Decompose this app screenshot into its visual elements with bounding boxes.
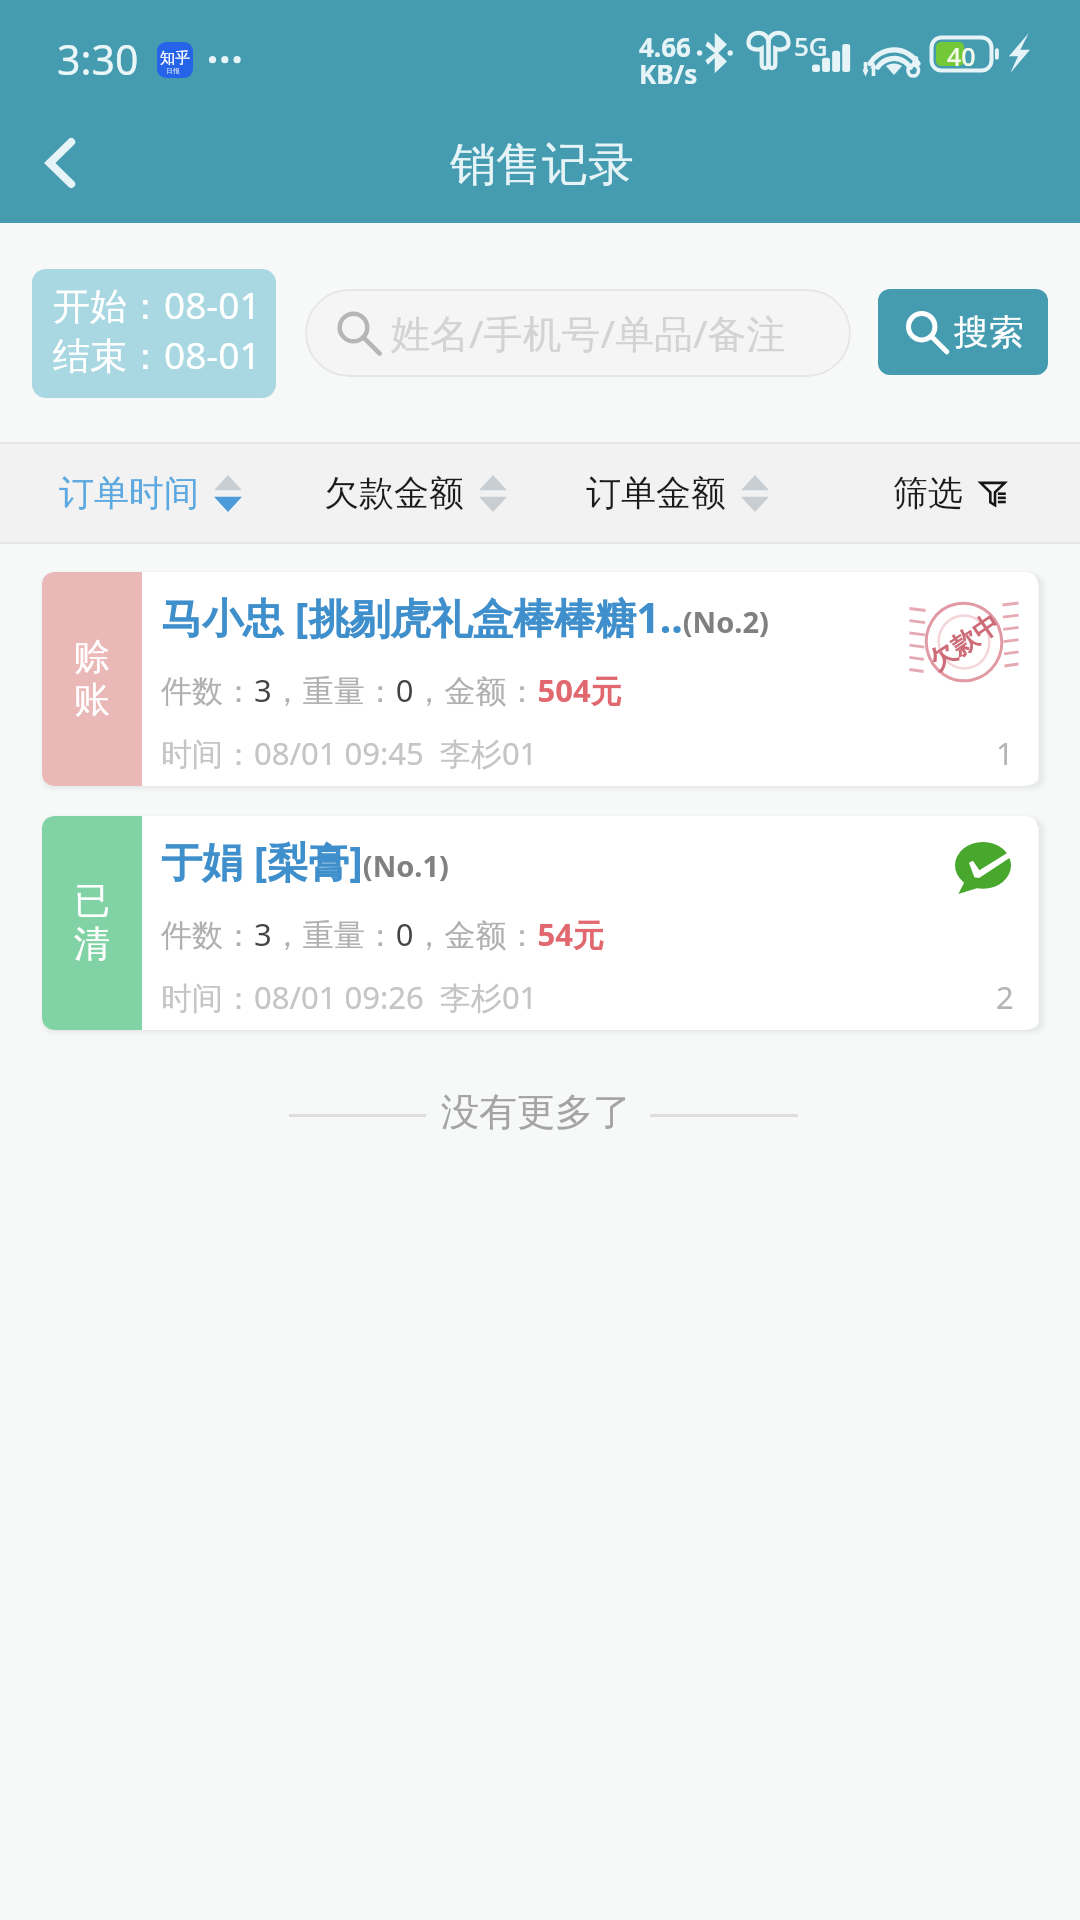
button[interactable]: 开始：08-01: [32, 269, 276, 398]
staticText: 筛选: [893, 471, 963, 515]
button[interactable]: Back: [10, 122, 108, 202]
button[interactable]: 筛选: [874, 455, 1032, 531]
staticText: 欠款中: [923, 607, 1006, 678]
button[interactable]: 欠款金额: [305, 455, 526, 531]
staticText: 1: [996, 732, 1014, 774]
button[interactable]: 搜索: [878, 289, 1048, 375]
staticText: 知乎: [160, 49, 190, 68]
staticText: 40: [947, 39, 976, 73]
staticText: 姓名/手机号/单品/备注: [391, 306, 786, 359]
staticText: 开始：08-01: [53, 279, 261, 330]
staticText: 已: [74, 878, 110, 923]
staticText: 件数：3，重量：0，金额：504元: [161, 669, 622, 711]
staticText: 3:30: [57, 31, 139, 87]
staticText: 销售记录: [450, 136, 634, 194]
staticText: 赊: [74, 634, 110, 679]
button[interactable]: 订单金额: [567, 455, 788, 531]
button[interactable]: 已: [42, 816, 1038, 1030]
staticText: 欠款金额: [324, 471, 464, 515]
staticText: 账: [74, 677, 110, 722]
button[interactable]: 订单时间: [40, 455, 261, 531]
staticText: KB/s: [639, 56, 698, 91]
staticText: 于娟 [梨膏](No.1): [161, 833, 449, 889]
staticText: 订单金额: [586, 471, 726, 515]
staticText: 清: [74, 921, 110, 966]
staticText: 时间：08/01 09:45 李杉01: [161, 732, 538, 774]
staticText: 马小忠 [挑剔虎礼盒棒棒糖1..(No.2): [161, 589, 769, 645]
staticText: 件数：3，重量：0，金额：54元: [161, 913, 604, 955]
staticText: 订单时间: [59, 471, 199, 515]
staticText: 4.66: [639, 29, 691, 64]
staticText: 结束：08-01: [53, 329, 261, 380]
button[interactable]: 姓名/手机号/单品/备注: [305, 289, 851, 377]
staticText: 日报: [166, 66, 180, 75]
staticText: 2: [996, 976, 1014, 1018]
staticText: 时间：08/01 09:26 李杉01: [161, 976, 538, 1018]
staticText: 5G: [794, 28, 828, 63]
button[interactable]: 赊: [42, 572, 1038, 786]
staticText: 没有更多了: [441, 1088, 631, 1136]
staticText: 搜索: [954, 310, 1024, 354]
